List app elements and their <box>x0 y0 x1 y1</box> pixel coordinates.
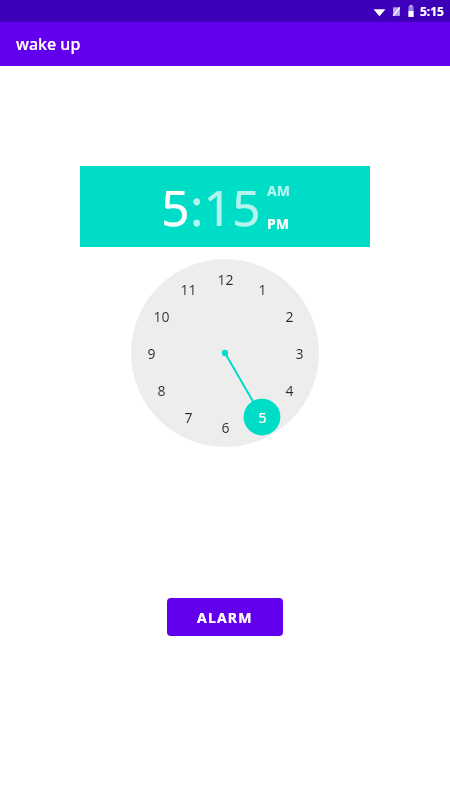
staticText: 1 <box>258 280 267 299</box>
button[interactable]: 9 <box>138 340 164 366</box>
button[interactable]: 6 <box>212 414 238 440</box>
staticText: 9 <box>147 344 156 363</box>
staticText: ALARM <box>197 608 253 627</box>
staticText: 8 <box>157 381 166 400</box>
button[interactable]: AM <box>267 181 290 200</box>
staticText: 3 <box>295 344 304 363</box>
button[interactable]: ALARM <box>167 598 283 636</box>
button[interactable]: 12 <box>212 266 238 292</box>
staticText: 7 <box>184 408 193 427</box>
staticText: 5 <box>258 408 267 427</box>
staticText: 5:15 <box>420 3 444 19</box>
staticText: 6 <box>221 418 230 437</box>
button[interactable]: 4 <box>276 377 302 403</box>
button[interactable]: 1 <box>249 276 275 302</box>
staticText: 2 <box>285 307 294 326</box>
staticText: 12 <box>217 270 234 289</box>
button[interactable]: 10 <box>148 303 174 329</box>
button[interactable]: 11 <box>175 276 201 302</box>
button[interactable]: :15 <box>190 173 261 241</box>
button[interactable]: 5 <box>249 404 275 430</box>
button[interactable]: PM <box>267 214 289 233</box>
button[interactable]: 7 <box>175 404 201 430</box>
button[interactable]: 2 <box>276 303 302 329</box>
staticText: 4 <box>285 381 294 400</box>
staticText: 11 <box>180 280 197 299</box>
button[interactable]: wake up <box>0 22 450 66</box>
button[interactable]: 1 <box>131 259 319 447</box>
button[interactable]: 3 <box>286 340 312 366</box>
button[interactable]: 5 <box>161 173 190 241</box>
staticText: wake up <box>16 33 81 55</box>
button[interactable]: 8 <box>148 377 174 403</box>
staticText: 10 <box>153 307 170 326</box>
